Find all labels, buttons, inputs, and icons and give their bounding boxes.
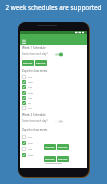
staticText: Mon [28,141,34,144]
staticText: Sun [28,75,33,78]
button[interactable]: Sun [22,74,85,79]
button[interactable]: 9:00 a.m. [35,60,47,66]
staticText: Week 2 Schedule [22,113,46,117]
staticText: Mon [28,80,34,83]
staticText: Fri [28,101,31,104]
staticText: Wed [28,91,33,94]
button[interactable]: Sat [22,105,85,110]
button[interactable]: 8:00 a.m. [57,156,69,162]
staticText: Tue [28,85,33,88]
staticText: 8:00 a.m. [23,62,33,65]
button[interactable]: Menu [21,38,27,44]
staticText: Wed [28,153,33,156]
staticText: Sat [28,106,32,109]
staticText: Same time each day? [22,119,48,123]
staticText: 8:00 a.m. [58,146,68,149]
staticText: Days the class meets [22,128,48,132]
button[interactable]: Toggle same time each day [55,119,63,124]
button[interactable]: 8:00 a.m. [22,60,34,66]
button[interactable]: Tue [22,146,85,151]
staticText: Thu [28,96,33,99]
button[interactable]: Toggle same time each day [55,52,63,57]
button[interactable]: Tue [22,84,85,89]
button[interactable]: Mon [22,140,85,145]
staticText: 8:00 a.m. [58,158,68,161]
staticText: Week 1 Schedule [22,46,46,50]
button[interactable]: 8:00 a.m. [44,156,56,162]
button[interactable]: 8:00 a.m. [44,144,56,150]
staticText: Same time each day? [22,52,48,56]
button[interactable]: Fri [22,100,85,105]
staticText: Days the class meets [22,69,48,73]
button[interactable]: Thu [22,95,85,100]
button[interactable]: Wed [22,152,85,157]
staticText: 2 week schedules are supported [0,3,107,12]
button[interactable]: 8:00 a.m. [57,144,69,150]
button[interactable]: Mon [22,79,85,84]
staticText: 8:00 a.m. [45,146,55,149]
staticText: Tue [28,147,33,150]
staticText: 9:00 a.m. [36,62,46,65]
staticText: 8:00 a.m. [45,158,55,161]
staticText: Sun [28,135,33,138]
button[interactable]: Wed [22,90,85,95]
button[interactable]: Sun [22,134,85,139]
